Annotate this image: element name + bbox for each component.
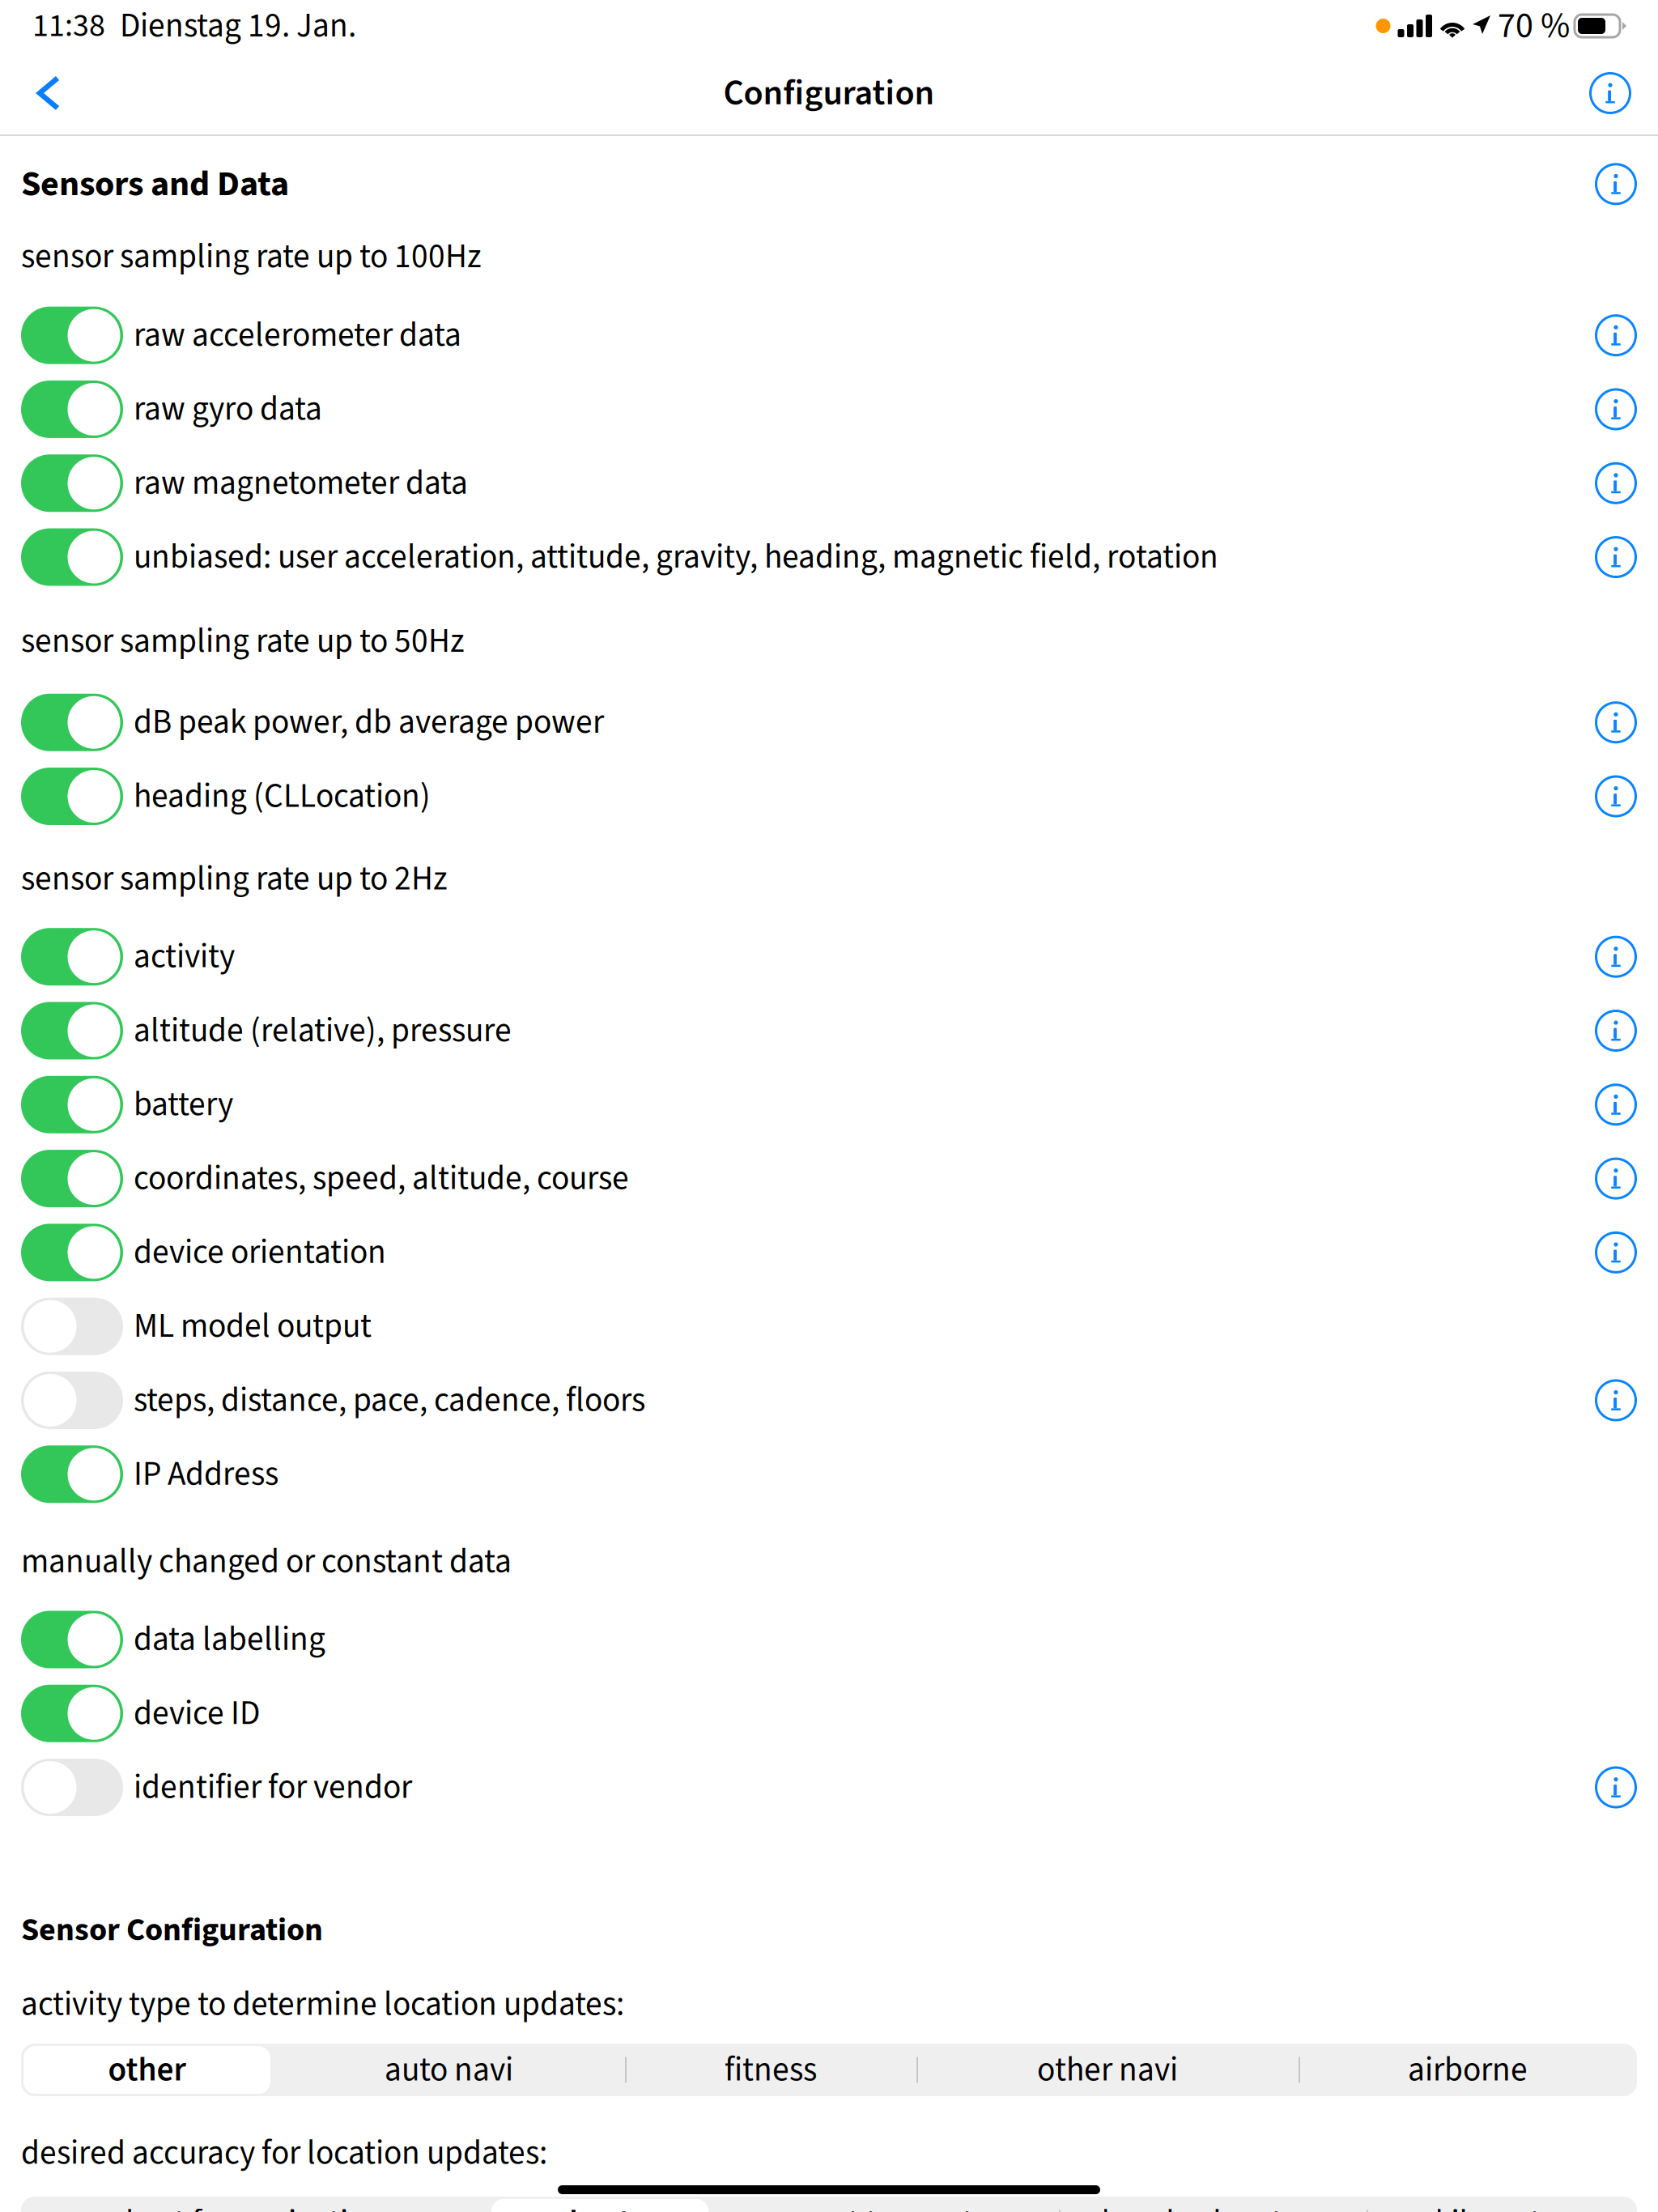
button[interactable]: About altitude (relative), pressure <box>1586 994 1646 1068</box>
staticText: heading (CLLocation) <box>134 772 431 820</box>
staticText: Sensors and Data <box>21 159 289 209</box>
button[interactable]: hundred meters <box>1059 2197 1367 2212</box>
staticText: other <box>108 2046 186 2094</box>
button[interactable]: other navi <box>916 2044 1299 2096</box>
staticText: raw accelerometer data <box>134 311 461 359</box>
staticText: activity <box>134 933 235 981</box>
staticText: fitness <box>725 2046 817 2094</box>
button[interactable]: About dB peak power, db average power <box>1586 685 1646 759</box>
button[interactable]: airborne <box>1299 2044 1637 2096</box>
staticText: device ID <box>134 1690 260 1737</box>
staticText: device orientation <box>134 1229 386 1276</box>
staticText: data labelling <box>134 1616 325 1663</box>
button[interactable]: heading (CLLocation) <box>21 759 1586 833</box>
staticText: airborne <box>1408 2046 1528 2094</box>
staticText: battery <box>134 1081 233 1129</box>
button[interactable]: device orientation <box>21 1215 1586 1289</box>
button[interactable]: About raw accelerometer data <box>1586 298 1646 372</box>
staticText: activity type to determine location upda… <box>21 1981 624 2028</box>
staticText: manually changed or constant data <box>21 1538 512 1586</box>
staticText: dB peak power, db average power <box>134 699 604 746</box>
button[interactable]: About unbiased: user acceleration, attit… <box>1586 520 1646 594</box>
staticText: identifier for vendor <box>134 1764 412 1811</box>
button[interactable]: IP Address <box>21 1437 1586 1511</box>
button[interactable]: data labelling <box>21 1603 1586 1676</box>
button[interactable]: raw gyro data <box>21 372 1586 446</box>
button[interactable]: fitness <box>625 2044 916 2096</box>
staticText: hundred meters <box>1101 2199 1324 2212</box>
button[interactable]: unbiased: user acceleration, attitude, g… <box>21 520 1586 594</box>
button[interactable]: other <box>21 2044 273 2096</box>
button[interactable]: About identifier for vendor <box>1586 1750 1646 1824</box>
staticText: unbiased: user acceleration, attitude, g… <box>134 533 1218 581</box>
button[interactable]: Back <box>18 58 79 128</box>
button[interactable]: nearest ten meters <box>711 2197 1059 2212</box>
button[interactable]: best for navigation <box>21 2197 489 2212</box>
button[interactable]: About heading (CLLocation) <box>1586 759 1646 833</box>
staticText: sensor sampling rate up to 50Hz <box>21 618 465 665</box>
button[interactable]: About raw gyro data <box>1586 372 1646 446</box>
button[interactable]: altitude (relative), pressure <box>21 994 1586 1068</box>
staticText: Sensor Configuration <box>21 1907 323 1953</box>
button[interactable]: About coordinates, speed, altitude, cour… <box>1586 1142 1646 1215</box>
button[interactable]: steps, distance, pace, cadence, floors <box>21 1363 1586 1437</box>
button[interactable]: device ID <box>21 1676 1586 1750</box>
button[interactable]: ML model output <box>21 1289 1586 1363</box>
staticText: altitude (relative), pressure <box>134 1007 512 1055</box>
staticText: desired accuracy for location updates: <box>21 2129 547 2177</box>
staticText: 70 % <box>1498 1 1570 51</box>
button[interactable]: About device orientation <box>1586 1215 1646 1289</box>
staticText: coordinates, speed, altitude, course <box>134 1155 629 1202</box>
button[interactable]: Info <box>1579 58 1641 128</box>
staticText: auto navi <box>385 2046 513 2094</box>
staticText: 11:38 <box>32 3 105 49</box>
staticText: steps, distance, pace, cadence, floors <box>134 1377 645 1424</box>
button[interactable]: identifier for vendor <box>21 1750 1586 1824</box>
button[interactable]: auto navi <box>273 2044 625 2096</box>
staticText: best <box>569 2199 631 2212</box>
button[interactable]: About raw magnetometer data <box>1586 446 1646 520</box>
staticText: IP Address <box>134 1450 278 1498</box>
button[interactable]: raw accelerometer data <box>21 298 1586 372</box>
staticText: nearest ten meters <box>755 2199 1015 2212</box>
staticText: raw magnetometer data <box>134 459 468 507</box>
button[interactable]: kilometer <box>1367 2197 1637 2212</box>
staticText: raw gyro data <box>134 385 322 433</box>
button[interactable]: coordinates, speed, altitude, course <box>21 1142 1586 1215</box>
staticText: kilometer <box>1435 2199 1569 2212</box>
button[interactable]: About activity <box>1586 920 1646 994</box>
staticText: ML model output <box>134 1303 372 1350</box>
staticText: best for navigation <box>125 2199 385 2212</box>
staticText: sensor sampling rate up to 2Hz <box>21 855 448 903</box>
staticText: Configuration <box>723 68 935 119</box>
staticText: Dienstag 19. Jan. <box>120 2 356 50</box>
staticText: other navi <box>1037 2046 1178 2094</box>
staticText: sensor sampling rate up to 100Hz <box>21 233 482 281</box>
button[interactable]: About steps, distance, pace, cadence, fl… <box>1586 1363 1646 1437</box>
button[interactable]: raw magnetometer data <box>21 446 1586 520</box>
button[interactable]: About battery <box>1586 1068 1646 1142</box>
button[interactable]: About Sensors and Data <box>1586 159 1646 210</box>
button[interactable]: dB peak power, db average power <box>21 685 1586 759</box>
button[interactable]: best <box>489 2197 711 2212</box>
button[interactable]: activity <box>21 920 1586 994</box>
button[interactable]: battery <box>21 1068 1586 1142</box>
